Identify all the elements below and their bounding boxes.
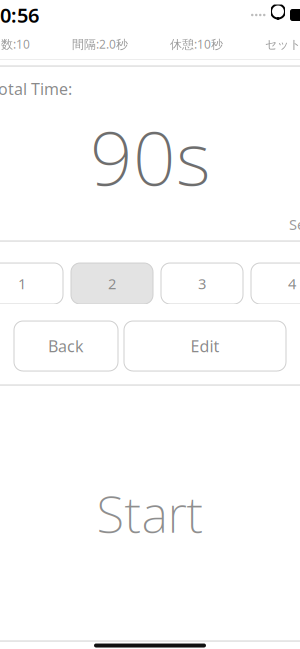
button[interactable]: Edit bbox=[124, 321, 286, 371]
staticText: Set bbox=[289, 214, 300, 234]
staticText: 2 bbox=[108, 274, 116, 293]
staticText: 10:56 bbox=[0, 2, 39, 28]
staticText: Start bbox=[96, 479, 203, 547]
button[interactable]: 3 bbox=[161, 263, 243, 304]
staticText: 4 bbox=[288, 274, 296, 293]
button[interactable]: 4 bbox=[251, 263, 300, 304]
staticText: Edit bbox=[190, 335, 219, 357]
button[interactable]: 1 bbox=[0, 263, 63, 304]
staticText: 休憩:10秒 bbox=[170, 36, 223, 52]
button[interactable]: Total Time: bbox=[0, 60, 300, 241]
staticText: 回数:10 bbox=[0, 36, 30, 52]
button[interactable]: 2 bbox=[71, 263, 153, 304]
staticText: Total Time: bbox=[0, 78, 72, 99]
button[interactable]: Start bbox=[0, 371, 300, 641]
button[interactable]: Back bbox=[14, 321, 118, 371]
staticText: Back bbox=[48, 335, 84, 357]
staticText: 間隔:2.0秒 bbox=[72, 36, 128, 52]
staticText: 90s bbox=[90, 107, 210, 206]
staticText: 1 bbox=[18, 274, 26, 293]
staticText: セット:3 bbox=[265, 36, 300, 52]
staticText: 3 bbox=[198, 274, 206, 293]
